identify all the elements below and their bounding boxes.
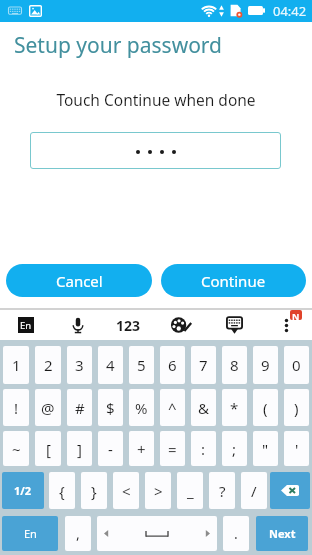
staticText: }: [91, 481, 97, 501]
button[interactable]: *: [222, 389, 247, 426]
button[interactable]: 4: [98, 346, 123, 384]
button[interactable]: @: [35, 389, 61, 426]
staticText: [: [46, 439, 51, 459]
staticText: &: [198, 398, 209, 418]
button[interactable]: En: [2, 516, 58, 551]
staticText: -: [108, 439, 113, 459]
button[interactable]: Space: [97, 516, 217, 551]
button[interactable]: -: [98, 431, 123, 466]
button[interactable]: More options: [280, 310, 304, 334]
button[interactable]: En: [18, 317, 34, 333]
staticText: @: [41, 398, 55, 418]
button[interactable]: $: [98, 389, 123, 426]
staticText: _: [187, 481, 194, 501]
button[interactable]: 8: [222, 346, 247, 384]
button[interactable]: [: [35, 431, 61, 466]
staticText: <: [122, 481, 131, 501]
staticText: ): [294, 398, 299, 418]
staticText: 9: [261, 355, 270, 375]
button[interactable]: =: [160, 431, 185, 466]
staticText: ^: [168, 398, 177, 418]
button[interactable]: 1/2: [2, 472, 44, 509]
button[interactable]: Backspace: [270, 472, 310, 509]
button[interactable]: Continue: [161, 264, 306, 297]
staticText: #: [75, 398, 85, 418]
staticText: >: [154, 481, 163, 501]
button[interactable]: [30, 132, 281, 169]
button[interactable]: }: [81, 472, 107, 509]
button[interactable]: ": [253, 431, 278, 466]
staticText: Setup your password: [14, 31, 223, 60]
button[interactable]: ?: [209, 472, 235, 509]
button[interactable]: <: [113, 472, 139, 509]
button[interactable]: +: [129, 431, 154, 466]
button[interactable]: Theme: [172, 317, 192, 333]
button[interactable]: 2: [35, 346, 61, 384]
staticText: 1: [12, 355, 21, 375]
button[interactable]: 0: [284, 346, 309, 384]
staticText: 0: [292, 355, 301, 375]
staticText: +: [137, 439, 146, 459]
button[interactable]: .: [223, 516, 249, 551]
button[interactable]: !: [3, 389, 29, 426]
button[interactable]: %: [129, 389, 154, 426]
button[interactable]: ): [284, 389, 309, 426]
button[interactable]: Next: [256, 516, 308, 551]
staticText: ;: [232, 439, 237, 459]
staticText: Continue: [201, 271, 266, 291]
button[interactable]: ^: [160, 389, 185, 426]
button[interactable]: ]: [67, 431, 92, 466]
staticText: N: [292, 310, 300, 320]
staticText: %: [135, 398, 148, 418]
staticText: 8: [230, 355, 239, 375]
staticText: 04:42: [273, 2, 307, 20]
button[interactable]: {: [49, 472, 75, 509]
staticText: =: [168, 439, 177, 459]
button[interactable]: (: [253, 389, 278, 426]
button[interactable]: Hide keyboard: [226, 316, 243, 334]
staticText: 5: [137, 355, 146, 375]
staticText: ,: [76, 524, 80, 543]
button[interactable]: Voice input: [70, 316, 86, 334]
staticText: (: [263, 398, 268, 418]
staticText: 7: [199, 355, 208, 375]
staticText: 4: [106, 355, 115, 375]
staticText: :: [201, 439, 206, 459]
staticText: En: [24, 526, 37, 541]
staticText: 6: [168, 355, 177, 375]
staticText: {: [59, 481, 65, 501]
staticText: .: [234, 524, 238, 543]
button[interactable]: >: [145, 472, 171, 509]
button[interactable]: ': [284, 431, 309, 466]
button[interactable]: ,: [65, 516, 91, 551]
staticText: 1/2: [14, 483, 32, 498]
staticText: !: [14, 398, 19, 418]
button[interactable]: ~: [3, 431, 29, 466]
staticText: 123: [116, 316, 141, 334]
button[interactable]: /: [241, 472, 267, 509]
staticText: En: [20, 319, 32, 332]
staticText: Touch Continue when done: [0, 89, 312, 110]
staticText: 3: [75, 355, 84, 375]
staticText: $: [106, 398, 115, 418]
staticText: *: [230, 398, 239, 418]
button[interactable]: 7: [191, 346, 216, 384]
staticText: Next: [269, 526, 296, 541]
staticText: ]: [77, 439, 82, 459]
button[interactable]: &: [191, 389, 216, 426]
staticText: 2: [44, 355, 53, 375]
button[interactable]: 1: [3, 346, 29, 384]
button[interactable]: 6: [160, 346, 185, 384]
button[interactable]: _: [177, 472, 203, 509]
staticText: ": [262, 439, 269, 459]
button[interactable]: ;: [222, 431, 247, 466]
button[interactable]: 3: [67, 346, 92, 384]
staticText: ~: [12, 439, 21, 459]
button[interactable]: Cancel: [6, 264, 152, 297]
button[interactable]: #: [67, 389, 92, 426]
button[interactable]: 5: [129, 346, 154, 384]
button[interactable]: 9: [253, 346, 278, 384]
button[interactable]: :: [191, 431, 216, 466]
button[interactable]: 123: [113, 316, 144, 334]
staticText: ?: [219, 481, 226, 501]
